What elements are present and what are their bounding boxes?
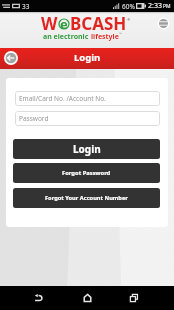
button[interactable]: Back [4,51,18,65]
button[interactable]: Back [28,288,48,308]
staticText: Password [19,114,49,123]
staticText: 33 [22,2,30,11]
staticText: ™ [119,31,122,36]
staticText: PM [163,3,171,10]
staticText: Forgot Your Account Number [45,194,128,202]
staticText: 2:33 [148,1,162,11]
staticText: lifestyle [91,32,119,42]
staticText: 60% [122,2,135,11]
button[interactable]: Forgot Your Account Number [13,188,160,208]
staticText: Login [74,51,101,64]
staticText: BCASH [70,12,127,35]
staticText: W [41,12,58,35]
staticText: Email/Card No. /Account No. [19,94,106,103]
button[interactable]: Forgot Password [13,163,160,183]
button[interactable]: Email/Card No. /Account No. [15,91,160,106]
staticText: Forgot Password [62,169,111,177]
button[interactable]: Login [13,139,160,159]
staticText: ® [127,17,131,22]
staticText: an electronic [43,32,91,42]
staticText: Login [73,142,101,156]
staticText: e [60,15,68,33]
button[interactable]: Recent apps [124,288,144,308]
button[interactable]: Password [15,111,160,126]
button[interactable]: Menu [157,17,170,30]
button[interactable]: Home [77,288,97,308]
